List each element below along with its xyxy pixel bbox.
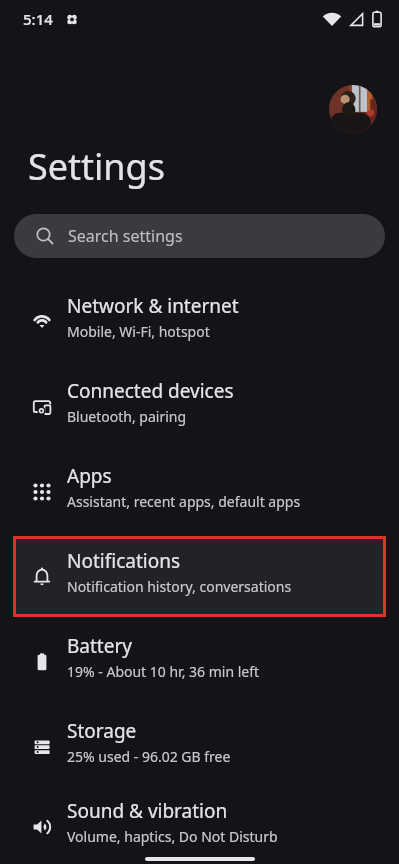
staticText: 5:14 [23,9,53,29]
button[interactable]: Search settings [14,214,385,258]
staticText: Settings [28,142,165,191]
staticText: Connected devices [67,378,234,404]
staticText: Notification history, conversations [67,577,292,596]
button[interactable] [329,85,377,133]
button[interactable]: Connected devices [0,364,399,449]
staticText: Sound & vibration [67,798,228,824]
button[interactable]: Notifications [13,536,386,617]
button[interactable]: Battery [0,619,399,704]
staticText: Mobile, Wi-Fi, hotspot [67,322,210,341]
staticText: Battery [67,633,132,659]
staticText: 19% - About 10 hr, 36 min left [67,662,260,681]
staticText: Network & internet [67,293,239,319]
staticText: Apps [67,463,112,489]
staticText: 25% used - 96.02 GB free [67,747,231,766]
staticText: Notifications [67,548,181,574]
staticText: Bluetooth, pairing [67,407,187,426]
staticText: Storage [67,718,137,744]
button[interactable]: Network & internet [0,279,399,364]
staticText: Volume, haptics, Do Not Disturb [67,827,278,846]
staticText: Assistant, recent apps, default apps [67,492,301,511]
button[interactable]: Sound & vibration [0,789,399,864]
button[interactable]: Apps [0,449,399,534]
button[interactable]: Storage [0,704,399,789]
staticText: Search settings [68,225,183,247]
